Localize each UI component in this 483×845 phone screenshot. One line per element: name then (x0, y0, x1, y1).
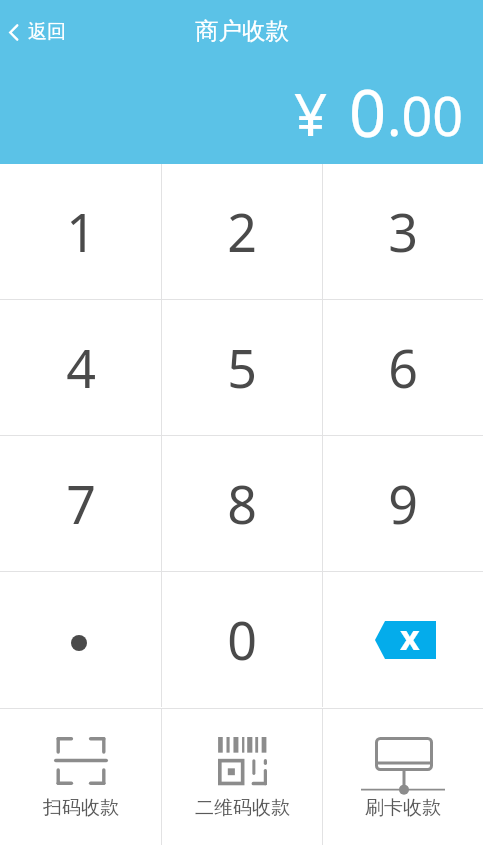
button[interactable]: 8 (162, 436, 322, 571)
staticText: 9 (388, 468, 418, 539)
staticText: 6 (388, 332, 418, 403)
staticText: 7 (66, 468, 96, 539)
staticText: 4 (66, 332, 96, 403)
staticText: ¥ (294, 74, 328, 153)
button[interactable]: Decimal point (0, 572, 161, 707)
button[interactable]: 7 (0, 436, 161, 571)
button[interactable]: Backspace (323, 572, 483, 707)
staticText: 1 (66, 196, 96, 267)
button[interactable]: 扫码收款 (0, 709, 161, 845)
staticText: 商户收款 (195, 16, 289, 46)
button[interactable]: 9 (323, 436, 483, 571)
button[interactable]: 刷卡收款 (323, 709, 483, 845)
staticText: 8 (227, 468, 257, 539)
staticText: 5 (227, 332, 257, 403)
button[interactable]: 返回 (4, 16, 72, 48)
button[interactable]: 6 (323, 300, 483, 435)
button[interactable]: 4 (0, 300, 161, 435)
staticText: 二维码收款 (195, 796, 290, 820)
button[interactable]: 5 (162, 300, 322, 435)
staticText: 0 (349, 68, 387, 157)
staticText: 3 (388, 196, 418, 267)
staticText: 2 (227, 196, 257, 267)
staticText: 刷卡收款 (365, 796, 441, 820)
staticText: 扫码收款 (43, 796, 119, 820)
button[interactable]: 二维码收款 (162, 709, 322, 845)
button[interactable]: 3 (323, 164, 483, 299)
staticText: 0 (227, 604, 257, 675)
staticText: x (400, 614, 420, 660)
button[interactable]: 0 (162, 572, 322, 707)
button[interactable]: 2 (162, 164, 322, 299)
staticText: 返回 (28, 20, 66, 44)
button[interactable]: 1 (0, 164, 161, 299)
staticText: .00 (387, 78, 464, 152)
